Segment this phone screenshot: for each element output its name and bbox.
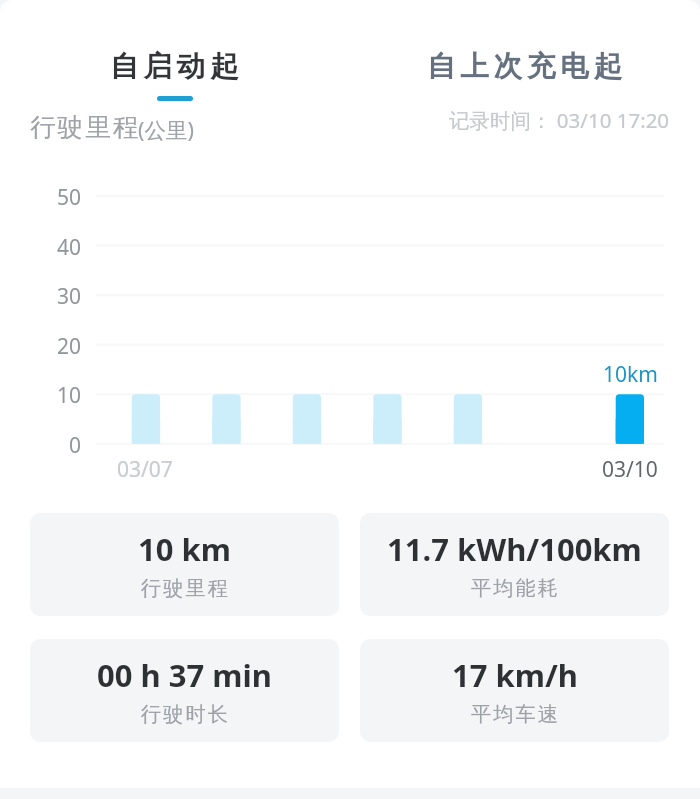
staticText: 50: [57, 183, 82, 209]
staticText: 0: [69, 431, 82, 457]
staticText: 03/07: [117, 455, 173, 484]
staticText: 平均车速: [471, 702, 561, 727]
staticText: 11.7 kWh/100km: [387, 528, 642, 570]
staticText: 平均能耗: [471, 576, 561, 601]
staticText: 自上次充电起: [427, 49, 627, 85]
staticText: (公里): [138, 115, 194, 144]
staticText: 40: [57, 233, 82, 259]
staticText: 记录时间： 03/10 17:20: [449, 106, 670, 134]
button[interactable]: 17 km/h: [360, 639, 669, 742]
button[interactable]: 自启动起: [57, 49, 297, 101]
staticText: 10km: [603, 360, 658, 389]
staticText: 10 km: [138, 528, 231, 570]
button[interactable]: 自上次充电起: [407, 49, 647, 85]
staticText: 00 h 37 min: [97, 654, 272, 696]
staticText: 03/10: [602, 455, 658, 484]
staticText: 行驶时长: [141, 702, 231, 727]
button[interactable]: 00 h 37 min: [30, 639, 339, 742]
staticText: 行驶里程: [30, 112, 141, 144]
staticText: 17 km/h: [452, 654, 578, 696]
staticText: 行驶里程: [141, 576, 231, 601]
staticText: 10: [57, 381, 82, 407]
button[interactable]: 10 km: [30, 513, 339, 616]
button[interactable]: 11.7 kWh/100km: [360, 513, 669, 616]
staticText: 30: [57, 282, 82, 308]
staticText: 20: [57, 332, 82, 358]
staticText: 自启动起: [110, 49, 244, 85]
